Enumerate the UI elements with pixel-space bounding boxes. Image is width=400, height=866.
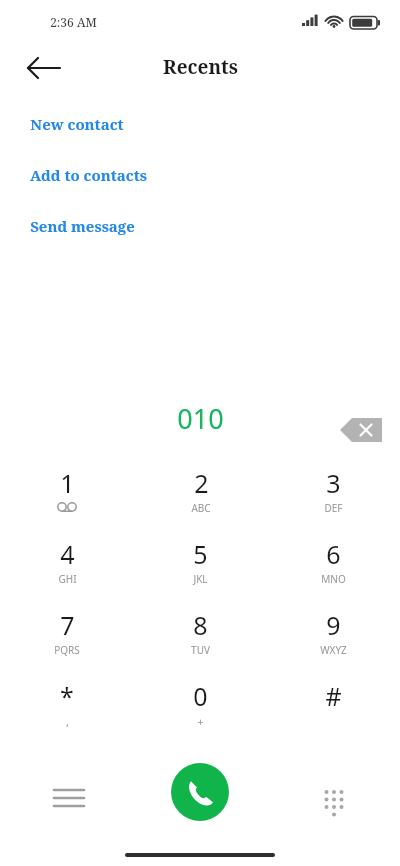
staticText: 1 — [60, 466, 75, 500]
staticText: New contact — [30, 114, 124, 134]
button[interactable]: Send message — [30, 214, 135, 238]
button[interactable]: 6 — [267, 531, 400, 602]
staticText: 5 — [193, 537, 208, 571]
staticText: Add to contacts — [30, 165, 147, 185]
staticText: 2 — [194, 466, 209, 500]
staticText: 0 — [193, 679, 208, 713]
staticText: 010 — [177, 400, 224, 437]
button[interactable]: 2 — [134, 460, 267, 531]
staticText: JKL — [193, 572, 208, 586]
staticText: * — [60, 679, 74, 713]
staticText: DEF — [324, 501, 343, 515]
button[interactable]: 0 — [134, 673, 267, 744]
button[interactable]: 5 — [134, 531, 267, 602]
staticText: Recents — [163, 54, 238, 80]
staticText: 6 — [326, 537, 341, 571]
button[interactable]: Dialpad — [312, 778, 356, 818]
staticText: PQRS — [54, 643, 80, 657]
staticText: Send message — [30, 216, 135, 236]
button[interactable]: # — [267, 673, 400, 744]
button[interactable]: Add to contacts — [30, 163, 147, 187]
staticText: WXYZ — [320, 643, 347, 657]
button[interactable]: Backspace — [338, 412, 374, 440]
staticText: 9 — [326, 608, 341, 642]
button[interactable]: Back — [16, 50, 60, 86]
staticText: 8 — [193, 608, 208, 642]
button[interactable]: 7 — [0, 602, 134, 673]
button[interactable]: 3 — [267, 460, 400, 531]
button[interactable]: 1 — [0, 460, 134, 531]
button[interactable]: Menu — [46, 778, 92, 818]
staticText: TUV — [191, 643, 210, 657]
button[interactable]: Call — [171, 763, 229, 821]
staticText: + — [197, 714, 204, 729]
staticText: # — [325, 679, 342, 713]
staticText: 7 — [60, 608, 75, 642]
staticText: GHI — [58, 572, 77, 586]
staticText: , — [66, 714, 69, 729]
staticText: ABC — [191, 501, 211, 515]
button[interactable]: 9 — [267, 602, 400, 673]
staticText: 3 — [326, 466, 341, 500]
button[interactable]: * — [0, 673, 134, 744]
button[interactable]: New contact — [30, 112, 124, 136]
staticText: 4 — [60, 537, 75, 571]
button[interactable]: 8 — [134, 602, 267, 673]
staticText: 2:36 AM — [50, 14, 97, 30]
button[interactable]: 4 — [0, 531, 134, 602]
staticText: MNO — [321, 572, 346, 586]
